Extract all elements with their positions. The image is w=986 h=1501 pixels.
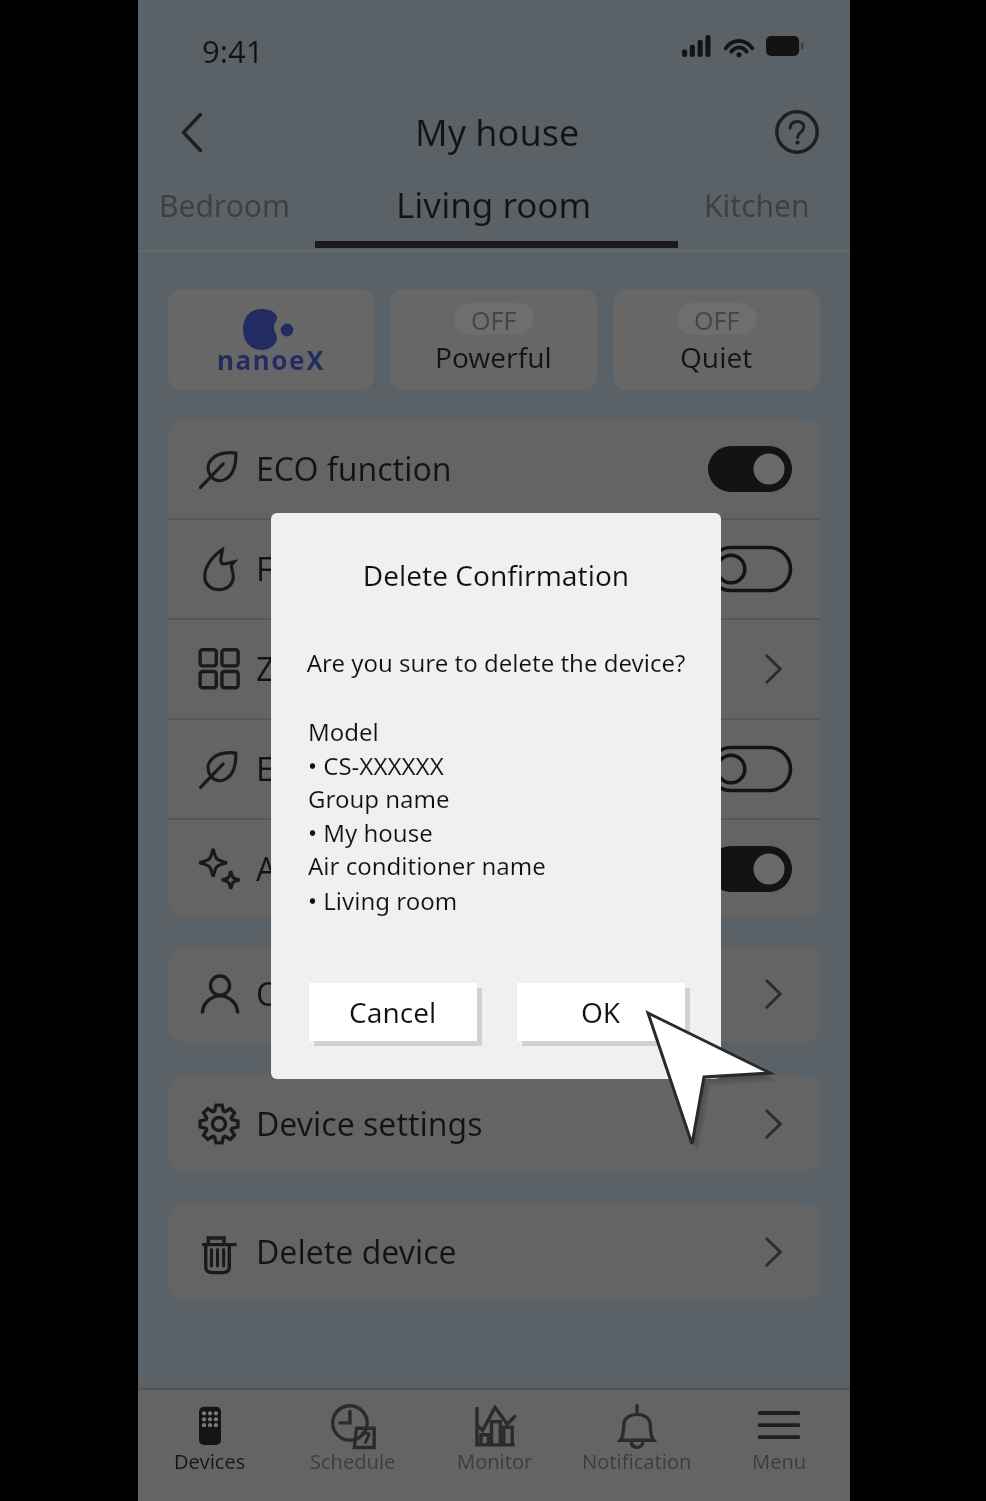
staticText: nanoeX	[217, 342, 326, 377]
staticText: Are you sure to delete the device?	[271, 646, 721, 679]
staticText: Energy saving	[256, 747, 467, 791]
button[interactable]: Kitchen	[664, 168, 850, 242]
staticText: Living room	[396, 181, 592, 229]
button[interactable]: Monitor	[424, 1390, 566, 1501]
button[interactable]: Devices	[138, 1390, 281, 1501]
staticText: Devices	[174, 1448, 246, 1475]
staticText: Notification	[582, 1448, 692, 1475]
button[interactable]: Menu	[708, 1390, 850, 1501]
staticText: OFF	[694, 303, 740, 335]
staticText: Powerful	[435, 338, 552, 376]
staticText: OFF	[471, 303, 517, 335]
staticText: AI control	[256, 847, 402, 891]
staticText: Menu	[752, 1448, 807, 1475]
staticText: Bedroom	[159, 185, 291, 226]
button[interactable]: Cancel	[309, 983, 477, 1041]
button[interactable]: Living room	[364, 168, 624, 242]
staticText: Cancel	[349, 993, 437, 1031]
staticText: Device settings	[256, 1102, 483, 1146]
button[interactable]: OK	[517, 983, 685, 1041]
staticText: Fire place	[256, 547, 400, 591]
staticText: • My house	[308, 816, 433, 849]
staticText: • Living room	[308, 884, 458, 917]
button[interactable]: Bedroom	[138, 168, 312, 242]
button[interactable]: ECO function	[168, 420, 820, 518]
button[interactable]: Help	[766, 101, 828, 163]
staticText: Owner registration	[256, 972, 541, 1016]
staticText: Delete Confirmation	[271, 556, 721, 594]
staticText: Kitchen	[704, 185, 810, 226]
staticText: ECO function	[256, 447, 452, 491]
button[interactable]: Back	[161, 101, 223, 163]
staticText: Schedule	[310, 1448, 396, 1475]
staticText: Air conditioner name	[308, 849, 546, 882]
button[interactable]: Owner registration	[168, 946, 820, 1042]
staticText: Quiet	[680, 338, 753, 376]
staticText: Zone	[256, 647, 332, 691]
button[interactable]: Delete device	[168, 1204, 820, 1300]
button[interactable]: Zone	[168, 620, 820, 718]
button[interactable]: OFF	[613, 289, 820, 390]
staticText: OK	[581, 993, 621, 1031]
button[interactable]: Schedule	[281, 1390, 424, 1501]
button[interactable]: Notification	[566, 1390, 708, 1501]
staticText: 9:41	[202, 30, 264, 72]
staticText: Group name	[308, 782, 450, 815]
staticText: My house	[415, 108, 580, 157]
button[interactable]: Energy saving	[168, 720, 820, 818]
button[interactable]: AI control	[168, 820, 820, 918]
button[interactable]: nanoeX	[168, 289, 374, 390]
staticText: Model	[308, 715, 379, 748]
staticText: • CS-XXXXXX	[308, 749, 444, 782]
button[interactable]: Device settings	[168, 1076, 820, 1172]
staticText: Delete device	[256, 1230, 457, 1274]
staticText: Monitor	[457, 1448, 533, 1475]
button[interactable]: Fire place	[168, 520, 820, 618]
button[interactable]: OFF	[390, 289, 597, 390]
